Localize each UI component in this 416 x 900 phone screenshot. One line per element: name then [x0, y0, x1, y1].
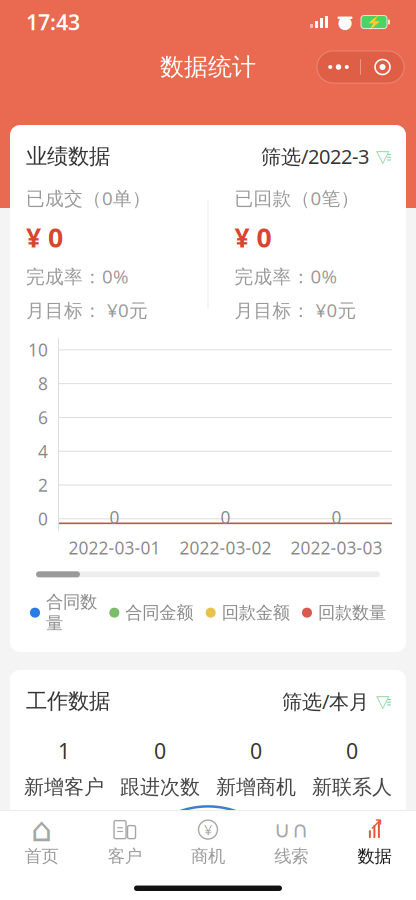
staticText: 工作数据 [26, 688, 110, 714]
button[interactable]: ⌂ [0, 811, 83, 873]
staticText: 月目标： ¥0元 [26, 298, 148, 322]
button[interactable]: 客户 [83, 811, 166, 873]
staticText: 完成率：0% [234, 264, 337, 289]
staticText: 合同金额 [125, 602, 193, 623]
staticText: 筛选/2022-3 [261, 143, 369, 170]
staticText: 完成率：0% [26, 264, 129, 289]
staticText: 回款数量 [318, 602, 386, 623]
staticText: 商机 [191, 846, 225, 867]
staticText: 1 [36, 834, 46, 857]
staticText: 已成交（0单） [26, 186, 151, 210]
staticText: 2 [38, 473, 48, 496]
staticText: 合同数量 [46, 591, 97, 634]
staticText: ● [337, 12, 352, 32]
staticText: 回款金额 [222, 602, 290, 623]
staticText: ∩ [292, 817, 309, 842]
staticText: 新增商机 [216, 775, 296, 799]
button[interactable]: ¥ [166, 811, 250, 873]
staticText: 0 [346, 736, 358, 765]
button[interactable]: 筛选/2022-3 [261, 143, 390, 170]
staticText: ↗ [369, 814, 384, 833]
staticText: 10 [28, 338, 48, 361]
staticText: 4 [38, 440, 48, 463]
staticText: 1 [58, 736, 70, 765]
staticText: ⌂ [31, 811, 52, 848]
staticText: 6 [38, 406, 48, 429]
staticText: 17:43 [26, 8, 80, 36]
staticText: ∪ [274, 817, 291, 842]
staticText: 2022-03-03 [290, 536, 382, 559]
staticText: 0 [250, 736, 262, 765]
staticText: ¥ 0 [26, 219, 63, 255]
staticText: 0 [331, 506, 341, 529]
staticText: 业绩数据 [26, 143, 110, 169]
staticText: ▽ [376, 691, 389, 711]
staticText: 月目标： ¥0元 [234, 298, 356, 322]
button[interactable]: ↗ [333, 811, 416, 873]
staticText: 0 [38, 507, 48, 530]
staticText: 2022-03-02 [179, 536, 271, 559]
staticText: 0 [220, 506, 230, 529]
staticText: ⚡ [365, 14, 382, 30]
staticText: 8 [38, 372, 48, 395]
staticText: 线索 [274, 846, 308, 867]
staticText: 新增客户 [24, 775, 104, 799]
staticText: 筛选/本月 [282, 688, 369, 714]
staticText: 客户 [108, 846, 142, 867]
button[interactable]: More [317, 51, 360, 83]
staticText: ¥ [204, 820, 212, 839]
staticText: 数据 [357, 846, 391, 867]
staticText: 已回款（0笔） [234, 186, 359, 210]
staticText: 跟进次数 [120, 775, 200, 799]
button[interactable]: 筛选/本月 [282, 688, 390, 714]
staticText: 新联系人 [312, 775, 392, 799]
staticText: ¥ 0 [234, 219, 271, 255]
staticText: 数据统计 [160, 52, 256, 82]
staticText: 1 [203, 811, 213, 834]
staticText: 2022-03-01 [68, 536, 160, 559]
staticText: ▽ [376, 146, 389, 166]
staticText: 首页 [25, 846, 59, 867]
button[interactable]: Close [361, 51, 404, 83]
button[interactable]: ∪ [250, 811, 333, 873]
staticText: 0 [154, 736, 166, 765]
staticText: 0 [109, 506, 119, 529]
